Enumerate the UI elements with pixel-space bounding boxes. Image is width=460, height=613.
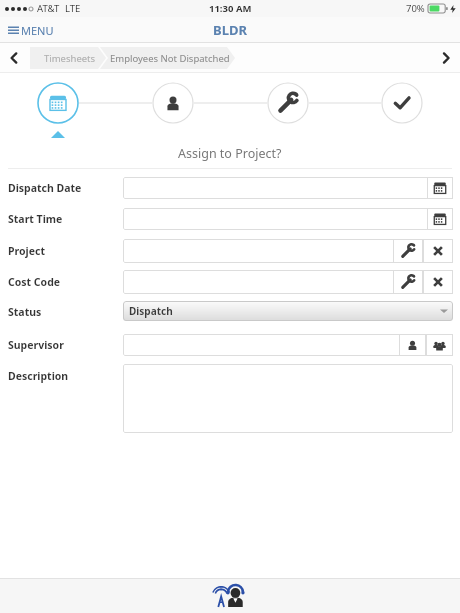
- button[interactable]: Back: [0, 43, 28, 73]
- button[interactable]: Supervisor action 2: [426, 334, 453, 356]
- button[interactable]: Supervisor: [123, 334, 453, 356]
- button[interactable]: Cost Code action 1: [393, 270, 423, 294]
- staticText: BLDR: [213, 21, 247, 39]
- button[interactable]: Supervisor action 1: [399, 334, 426, 356]
- staticText: Employees Not Dispatched: [110, 52, 230, 65]
- button[interactable]: Description: [123, 364, 453, 433]
- button[interactable]: Status Dispatch: [123, 301, 453, 321]
- staticText: Status: [8, 305, 42, 319]
- button[interactable]: Forward: [432, 43, 460, 73]
- staticText: Description: [8, 369, 69, 383]
- button[interactable]: MENU: [0, 19, 62, 42]
- button[interactable]: Cost Code: [123, 270, 453, 294]
- staticText: Start Time: [8, 212, 63, 226]
- button[interactable]: Contact support: [209, 581, 251, 611]
- button[interactable]: Start Time: [123, 208, 453, 230]
- staticText: Dispatch Date: [8, 181, 82, 195]
- staticText: LTE: [65, 2, 81, 15]
- button[interactable]: Dispatch Date action 1: [427, 177, 453, 199]
- button[interactable]: Project action 1: [393, 239, 423, 263]
- button[interactable]: Dispatch Date: [123, 177, 453, 199]
- staticText: 11:30 AM: [209, 2, 252, 15]
- staticText: AT&T: [37, 2, 60, 15]
- button[interactable]: Cost Code action 2: [423, 270, 453, 294]
- staticText: Timesheets: [44, 52, 96, 65]
- button[interactable]: [30, 47, 240, 69]
- staticText: Supervisor: [8, 338, 64, 352]
- staticText: Dispatch: [129, 304, 173, 318]
- staticText: Cost Code: [8, 275, 61, 289]
- staticText: Project: [8, 244, 45, 258]
- button[interactable]: Project action 2: [423, 239, 453, 263]
- staticText: 70%: [406, 2, 425, 15]
- staticText: MENU: [21, 23, 54, 38]
- button[interactable]: Start Time action 1: [427, 208, 453, 230]
- button[interactable]: Project: [123, 239, 453, 263]
- staticText: Assign to Project?: [178, 145, 282, 162]
